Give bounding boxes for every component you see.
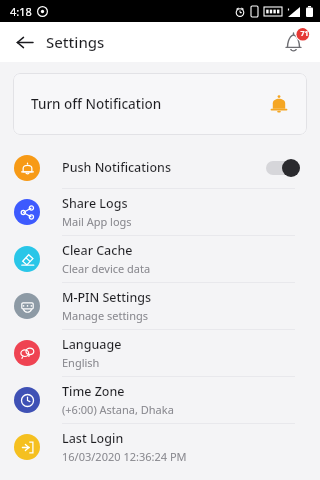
- staticText: Mail App logs: [62, 214, 132, 229]
- staticText: (+6:00) Astana, Dhaka: [62, 402, 174, 417]
- staticText: Time Zone: [62, 383, 125, 400]
- button[interactable]: Clear Cache: [0, 236, 320, 282]
- staticText: Clear device data: [62, 261, 151, 276]
- staticText: Language: [62, 336, 122, 353]
- button[interactable]: Back: [8, 26, 40, 58]
- staticText: Clear Cache: [62, 242, 133, 259]
- button[interactable]: Last Login: [0, 424, 320, 470]
- staticText: Push Notifications: [62, 159, 171, 176]
- staticText: Last Login: [62, 430, 124, 447]
- staticText: Share Logs: [62, 195, 128, 212]
- staticText: Manage settings: [62, 308, 149, 323]
- staticText: 4:18: [10, 4, 32, 19]
- button[interactable]: M-PIN Settings: [0, 283, 320, 329]
- staticText: M-PIN Settings: [62, 289, 152, 306]
- staticText: Settings: [46, 32, 105, 52]
- staticText: Turn off Notification: [31, 95, 162, 113]
- button[interactable]: Language: [0, 330, 320, 376]
- button[interactable]: Push Notifications: [0, 147, 320, 188]
- staticText: 16/03/2020 12:36:24 PM: [62, 449, 187, 464]
- button[interactable]: Turn off Notification: [13, 73, 307, 135]
- staticText: 71: [300, 29, 309, 39]
- button[interactable]: [266, 159, 300, 177]
- button[interactable]: Notifications: [278, 25, 312, 59]
- button[interactable]: Share Logs: [0, 189, 320, 235]
- staticText: English: [62, 355, 100, 370]
- button[interactable]: Time Zone: [0, 377, 320, 423]
